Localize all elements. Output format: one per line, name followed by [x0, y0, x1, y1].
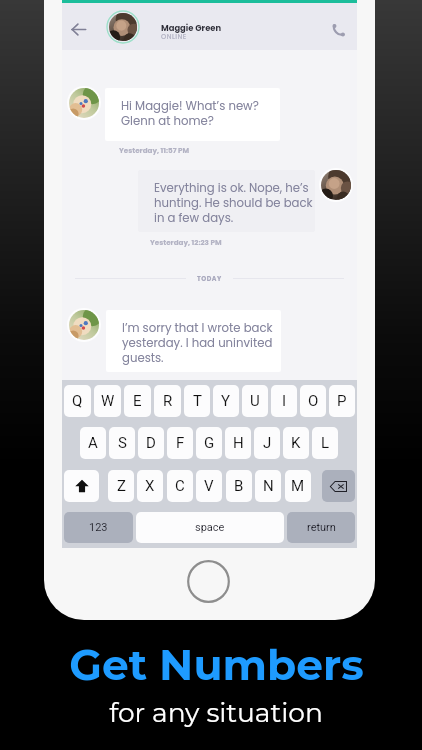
staticText: Z — [117, 477, 126, 495]
button[interactable]: T — [184, 385, 210, 417]
button[interactable]: N — [255, 470, 281, 502]
button[interactable]: Shift — [64, 470, 99, 502]
staticText: M — [291, 477, 305, 495]
staticText: S — [118, 434, 127, 452]
staticText: C — [175, 477, 185, 495]
staticText: Yesterday, 12:23 PM — [150, 237, 222, 247]
button[interactable]: Backspace — [322, 470, 355, 502]
staticText: I — [282, 392, 287, 410]
staticText: B — [234, 477, 244, 495]
staticText: 123 — [89, 521, 108, 534]
staticText: V — [204, 477, 214, 495]
button[interactable]: W — [94, 385, 121, 417]
button[interactable]: L — [312, 427, 338, 459]
staticText: for any situation — [109, 696, 323, 728]
button[interactable]: M — [285, 470, 311, 502]
button[interactable]: U — [242, 385, 268, 417]
button[interactable]: 123 — [64, 512, 133, 543]
staticText: K — [291, 434, 301, 452]
button[interactable]: S — [109, 427, 135, 459]
button[interactable]: space — [136, 512, 284, 543]
staticText: D — [146, 434, 156, 452]
staticText: L — [321, 434, 330, 452]
button[interactable]: H — [225, 427, 251, 459]
staticText: Q — [72, 392, 83, 410]
staticText: O — [308, 392, 319, 410]
staticText: U — [250, 392, 260, 410]
staticText: Y — [221, 392, 231, 410]
staticText: T — [193, 392, 202, 410]
staticText: J — [263, 434, 272, 452]
staticText: W — [101, 392, 115, 410]
staticText: Maggie Green — [161, 22, 222, 34]
button[interactable]: return — [287, 512, 355, 543]
staticText: ONLINE — [161, 32, 187, 41]
staticText: Yesterday, 11:57 PM — [119, 145, 190, 155]
button[interactable]: B — [226, 470, 252, 502]
staticText: P — [337, 392, 347, 410]
button[interactable]: Q — [64, 385, 91, 417]
button[interactable]: J — [254, 427, 280, 459]
button[interactable]: C — [167, 470, 193, 502]
staticText: I’m sorry that I wrote back yesterday. I… — [122, 320, 273, 366]
staticText: E — [133, 392, 142, 410]
staticText: Get Numbers — [69, 639, 364, 691]
button[interactable]: E — [124, 385, 151, 417]
staticText: H — [233, 434, 244, 452]
staticText: N — [263, 477, 274, 495]
button[interactable]: A — [80, 427, 106, 459]
button[interactable]: Y — [213, 385, 239, 417]
staticText: F — [176, 434, 185, 452]
button[interactable]: O — [300, 385, 326, 417]
button[interactable]: Z — [108, 470, 134, 502]
button[interactable]: D — [138, 427, 164, 459]
staticText: space — [195, 521, 225, 534]
button[interactable]: K — [283, 427, 309, 459]
button[interactable]: R — [154, 385, 181, 417]
button[interactable]: Call — [325, 17, 351, 43]
staticText: return — [307, 521, 336, 534]
staticText: TODAY — [197, 274, 222, 283]
button[interactable]: I — [271, 385, 297, 417]
staticText: A — [88, 434, 98, 452]
staticText: G — [204, 434, 215, 452]
button[interactable]: G — [196, 427, 222, 459]
button[interactable]: Back — [65, 16, 91, 42]
staticText: R — [163, 392, 173, 410]
staticText: X — [145, 477, 155, 495]
staticText: Everything is ok. Nope, he’s hunting. He… — [154, 180, 313, 226]
button[interactable]: V — [196, 470, 222, 502]
button[interactable]: F — [167, 427, 193, 459]
button[interactable]: P — [329, 385, 355, 417]
staticText: Hi Maggie! What’s new? Glenn at home? — [121, 98, 259, 129]
button[interactable]: X — [137, 470, 163, 502]
